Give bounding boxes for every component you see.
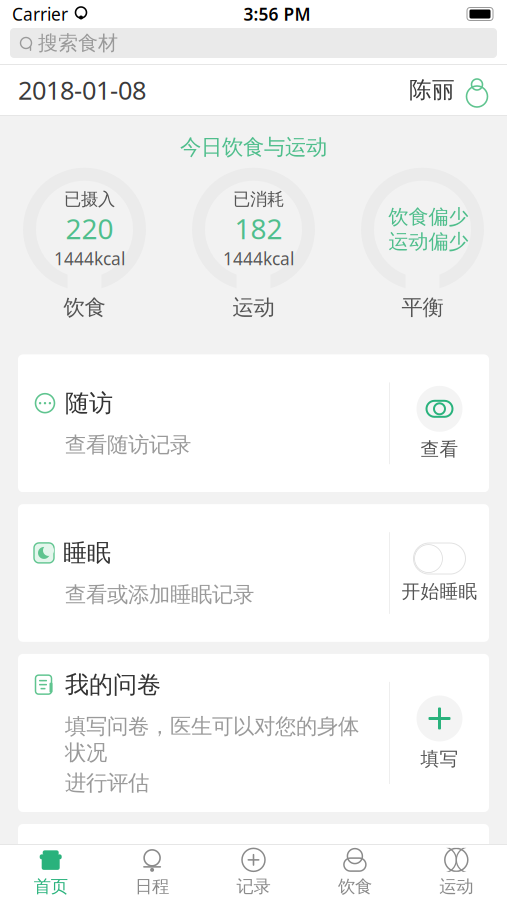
staticText: 饮食 — [338, 876, 372, 897]
button[interactable]: 日程 — [101, 841, 203, 900]
staticText: 填写 — [420, 747, 458, 770]
staticText: Carrier — [12, 2, 68, 25]
staticText: 日程 — [135, 876, 169, 897]
staticText: 1444kcal — [54, 247, 125, 270]
staticText: 已消耗 — [233, 188, 284, 210]
button[interactable]: 首页 — [0, 841, 101, 900]
staticText: 查看或添加睡眠记录 — [65, 582, 254, 608]
staticText: 2018-01-08 — [18, 73, 146, 107]
staticText: 182 — [234, 210, 282, 247]
staticText: 查看 — [420, 438, 458, 461]
staticText: 220 — [65, 210, 113, 247]
button[interactable]: 查看 — [390, 845, 489, 900]
staticText: 运动 — [439, 876, 473, 897]
staticText: 风险评估 — [65, 858, 161, 887]
staticText: 1444kcal — [223, 247, 294, 270]
button[interactable]: 开始睡眠 — [390, 533, 489, 613]
button[interactable]: 记录 — [203, 841, 304, 900]
staticText: 首页 — [34, 876, 68, 897]
button[interactable]: 填写 — [390, 685, 489, 780]
staticText: 记录 — [236, 876, 270, 897]
button[interactable]: 饮食 — [304, 841, 406, 900]
staticText: 今日饮食与运动 — [180, 134, 327, 160]
staticText: 平衡 — [401, 294, 443, 320]
staticText: 填写问卷，医生可以对您的身体状况 — [65, 713, 359, 766]
button[interactable]: 运动 — [406, 841, 507, 900]
staticText: 饮食偏少 — [388, 205, 468, 229]
staticText: 陈丽 — [409, 76, 455, 104]
button[interactable]: 陈丽 — [409, 76, 489, 104]
staticText: 进行评估 — [65, 770, 149, 796]
staticText: 饮食 — [63, 294, 105, 320]
staticText: 随访 — [65, 388, 113, 418]
staticText: 查看随访记录 — [65, 432, 191, 458]
staticText: 开始睡眠 — [401, 580, 477, 603]
staticText: 运动 — [232, 294, 274, 320]
staticText: 已摄入 — [64, 188, 115, 210]
staticText: 搜索食材 — [38, 31, 118, 55]
staticText: 3:56 PM — [243, 2, 310, 25]
staticText: 运动偏少 — [388, 229, 468, 254]
button[interactable]: 查看 — [390, 376, 489, 471]
staticText: 睡眠 — [63, 538, 111, 568]
button[interactable]: 搜索食材 — [10, 28, 497, 58]
staticText: 我的问卷 — [65, 670, 161, 699]
